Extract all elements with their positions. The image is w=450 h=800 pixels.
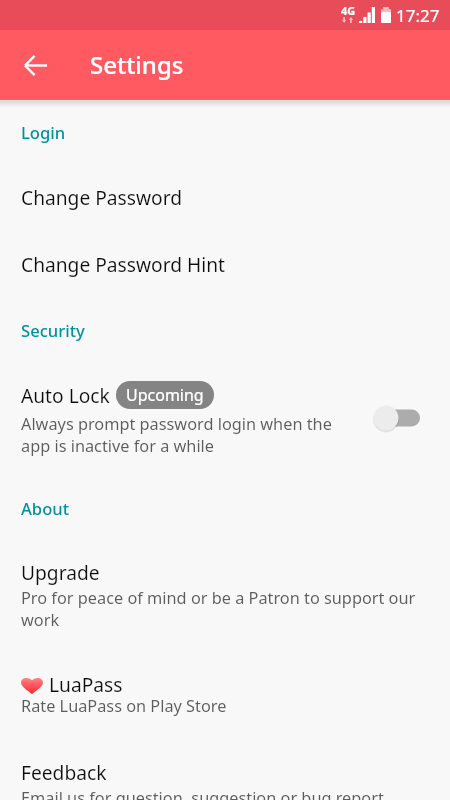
button[interactable]: Change Password <box>0 179 450 225</box>
staticText: Auto Lock <box>21 382 110 408</box>
staticText: Rate LuaPass on Play Store <box>21 695 227 717</box>
staticText: LuaPass <box>49 671 123 697</box>
staticText: Always prompt password login when the ap… <box>21 413 341 457</box>
staticText: Upcoming <box>126 384 204 406</box>
button[interactable]: Auto Lock toggle <box>373 403 433 433</box>
staticText: Upgrade <box>21 559 100 585</box>
staticText: Feedback <box>21 759 107 785</box>
staticText: About <box>21 497 70 520</box>
button[interactable]: Back <box>7 30 63 100</box>
staticText: Change Password Hint <box>21 251 225 277</box>
button[interactable]: Feedback <box>0 754 450 800</box>
button[interactable]: Auto Lock <box>0 378 450 460</box>
button[interactable]: LuaPass <box>0 663 450 725</box>
staticText: Security <box>21 319 85 342</box>
staticText: Change Password <box>21 184 183 210</box>
staticText: Email us for question, suggestion or bug… <box>21 787 384 800</box>
button[interactable]: Change Password Hint <box>0 246 450 292</box>
staticText: 17:27 <box>396 4 440 27</box>
button[interactable]: Upgrade <box>0 554 450 630</box>
staticText: Pro for peace of mind or be a Patron to … <box>21 587 425 631</box>
staticText: Settings <box>90 48 184 81</box>
staticText: Login <box>21 121 66 144</box>
staticText: 4G <box>341 3 356 18</box>
